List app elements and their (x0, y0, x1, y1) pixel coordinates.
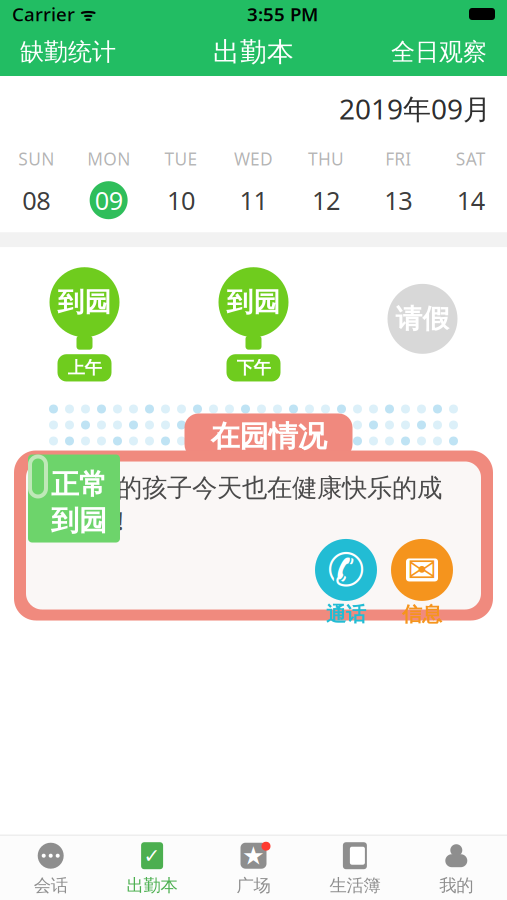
button[interactable]: 生活簿 (304, 836, 406, 896)
staticText: 下午 (236, 357, 270, 378)
staticText: 14 (457, 183, 485, 217)
staticText: 3:55 PM (247, 2, 318, 26)
staticText: 08 (22, 183, 50, 217)
button[interactable]: 10 (149, 178, 213, 222)
button[interactable]: 14 (439, 178, 503, 222)
staticText: 出勤本 (213, 36, 294, 68)
button[interactable]: 会话 (0, 836, 101, 896)
button[interactable]: 13 (366, 178, 430, 222)
staticText: ? (51, 487, 64, 523)
staticText: 到园 (51, 503, 107, 538)
button[interactable]: 缺勤统计 (6, 29, 130, 75)
button[interactable]: 我的 (406, 836, 507, 896)
staticText: 09 (95, 183, 123, 217)
staticText: 通话 (326, 602, 366, 626)
staticText: 会话 (34, 875, 68, 896)
staticText: ✉ (407, 550, 436, 590)
button[interactable]: 09 (77, 178, 141, 222)
staticText: ✓ (144, 844, 161, 867)
staticText: 广场 (236, 875, 270, 896)
button[interactable]: ✉ (391, 539, 453, 626)
staticText: WED (234, 147, 273, 170)
staticText: 2019年09月 (339, 90, 491, 127)
staticText: 到园 (57, 286, 111, 319)
staticText: FRI (385, 147, 411, 170)
staticText: MON (87, 147, 130, 170)
button[interactable]: ✆ (315, 539, 377, 626)
staticText: 信息 (402, 602, 442, 626)
staticText: ✆ (327, 544, 365, 596)
staticText: 生活簿 (329, 875, 380, 896)
staticText: 我的 (439, 875, 473, 896)
button[interactable]: ★ (203, 836, 304, 896)
staticText: THU (308, 147, 344, 170)
staticText: TUE (165, 147, 198, 170)
staticText: 到园 (226, 286, 280, 319)
button[interactable]: 12 (294, 178, 358, 222)
staticText: 10 (167, 183, 195, 217)
staticText: 正常 (51, 467, 107, 501)
staticText: 请假 (395, 302, 449, 335)
button[interactable]: ✓ (101, 836, 203, 896)
staticText: 11 (239, 183, 267, 217)
staticText: 上午 (67, 357, 101, 378)
staticText: SAT (456, 147, 486, 170)
staticText: 13 (384, 183, 412, 217)
button[interactable]: 08 (4, 178, 68, 222)
staticText: 出勤本 (127, 875, 178, 896)
staticText: 12 (312, 183, 340, 217)
button[interactable]: 11 (221, 178, 285, 222)
button[interactable]: 全日观察 (377, 29, 501, 75)
staticText: 缺勤统计 (20, 37, 116, 67)
staticText: ★ (242, 841, 265, 870)
staticText: Carrier (12, 2, 75, 26)
staticText: 全日观察 (391, 37, 487, 67)
staticText: 您的孩子今天也在健康快乐的成长! (92, 472, 442, 537)
staticText: ᯤ (75, 2, 96, 25)
staticText: 在园情况 (210, 418, 326, 454)
staticText: SUN (18, 147, 54, 170)
